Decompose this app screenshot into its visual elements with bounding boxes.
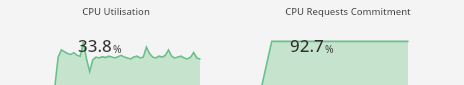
staticText: 33.8 [78,34,112,57]
staticText: % [113,42,122,56]
staticText: CPU Requests Commitment [285,5,411,18]
staticText: 92.7 [290,34,324,57]
button[interactable]: CPU Requests Commitment [232,0,464,85]
staticText: CPU Utilisation [82,5,150,18]
staticText: % [325,42,334,56]
button[interactable]: CPU Utilisation [0,0,232,85]
